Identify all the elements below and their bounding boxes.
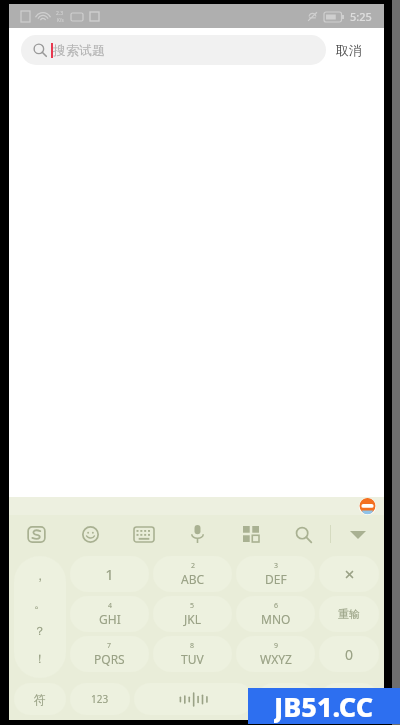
staticText: 搜索试题 xyxy=(53,42,105,58)
button[interactable]: Keyboard assistant xyxy=(359,498,376,515)
staticText: ！ xyxy=(34,651,46,666)
staticText: DEF xyxy=(265,571,287,587)
staticText: 8 xyxy=(190,641,195,651)
staticText: 符 xyxy=(34,692,46,707)
staticText: 6 xyxy=(274,601,279,611)
staticText: ？ xyxy=(34,623,46,638)
staticText: WXYZ xyxy=(260,651,292,667)
button[interactable]: 8 xyxy=(153,636,232,672)
button[interactable]: More tools xyxy=(224,515,277,553)
staticText: 4 xyxy=(108,601,113,611)
button[interactable]: 9 xyxy=(236,636,315,672)
staticText: 中/英 xyxy=(275,692,299,706)
button[interactable]: 4 xyxy=(70,596,149,632)
button[interactable]: Space xyxy=(134,683,253,715)
staticText: ， xyxy=(34,568,46,583)
staticText: TUV xyxy=(181,651,204,667)
button[interactable]: Emoji xyxy=(63,515,117,553)
button[interactable]: 7 xyxy=(70,636,149,672)
staticText: 。 xyxy=(34,596,46,611)
button[interactable]: 123 xyxy=(70,683,130,715)
staticText: 5 xyxy=(190,601,195,611)
button[interactable]: Search xyxy=(277,515,330,553)
staticText: 2 xyxy=(191,561,196,571)
staticText: JB51.CC xyxy=(274,688,374,724)
staticText: ABC xyxy=(181,571,205,587)
button[interactable]: 搜索试题 xyxy=(21,35,326,65)
button[interactable]: Voice input xyxy=(171,515,224,553)
button[interactable]: ， xyxy=(14,556,66,678)
button[interactable]: 6 xyxy=(236,596,315,632)
button[interactable]: 5 xyxy=(153,596,232,632)
staticText: K/s xyxy=(57,17,64,23)
button[interactable]: Hide keyboard xyxy=(331,515,384,553)
staticText: GHI xyxy=(99,611,121,627)
button[interactable]: 中/英 xyxy=(257,683,316,715)
button[interactable]: 0 xyxy=(319,636,379,672)
button[interactable]: Enter xyxy=(320,683,379,715)
staticText: 取消 xyxy=(336,42,362,58)
button[interactable]: 取消 xyxy=(326,36,372,64)
staticText: 5:25 xyxy=(350,9,372,24)
staticText: 123 xyxy=(91,692,109,706)
staticText: 9 xyxy=(274,641,279,651)
staticText: MNO xyxy=(261,611,291,627)
staticText: PQRS xyxy=(94,651,125,667)
button[interactable]: 符 xyxy=(14,683,66,715)
button[interactable]: 重输 xyxy=(319,596,379,632)
button[interactable]: Keyboard layout xyxy=(117,515,171,553)
button[interactable]: 3 xyxy=(236,556,315,592)
button[interactable]: Backspace xyxy=(319,556,379,592)
button[interactable]: Sogou menu xyxy=(9,515,63,553)
staticText: 3 xyxy=(274,561,279,571)
staticText: 2.3 xyxy=(56,10,64,17)
staticText: 7 xyxy=(107,641,112,651)
staticText: JKL xyxy=(184,611,201,627)
staticText: 0 xyxy=(345,645,354,664)
button[interactable]: 1 xyxy=(70,556,149,592)
button[interactable]: 2 xyxy=(153,556,232,592)
staticText: 1 xyxy=(105,564,114,584)
staticText: 重输 xyxy=(338,607,360,621)
